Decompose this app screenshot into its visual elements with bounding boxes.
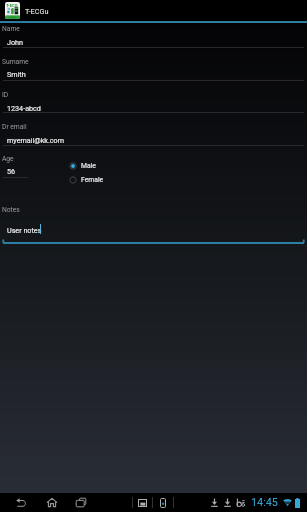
staticText: T-ECG [6,3,18,8]
button[interactable] [3,67,304,81]
staticText: T-ECGu [25,7,49,16]
button[interactable]: Back [11,493,30,512]
button[interactable]: Silent mode [236,498,246,507]
button[interactable] [3,101,304,114]
staticText: Age [2,155,14,163]
other: Download [210,498,219,507]
button[interactable]: USB notification [160,498,166,508]
staticText: 56 [7,167,16,175]
other: Wi-Fi [283,498,292,507]
button[interactable]: Home [42,493,61,512]
staticText: Surname [2,58,29,66]
button[interactable] [3,35,304,49]
staticText: Female [81,176,104,184]
staticText: Notes [2,206,20,214]
staticText: Male [81,162,96,170]
staticText: John [7,38,23,46]
staticText: User notes [7,226,42,234]
button[interactable] [3,133,304,146]
button[interactable]: Screenshot notification [138,499,147,507]
button[interactable]: 14:45 [251,496,278,509]
staticText: 1234-abcd [7,104,41,112]
staticText: myemail@kk.com [7,136,64,144]
staticText: Dr email [2,123,27,131]
other: App icon [5,2,20,19]
button[interactable]: Female [67,173,104,187]
other: Battery [295,498,300,508]
button[interactable] [3,218,304,242]
staticText: Smith [7,70,26,78]
other: Download [223,498,232,507]
button[interactable]: Recent apps [71,493,90,512]
button[interactable]: Male [67,159,96,173]
staticText: ID [2,91,9,99]
button[interactable] [3,164,28,178]
staticText: Name [2,25,20,33]
